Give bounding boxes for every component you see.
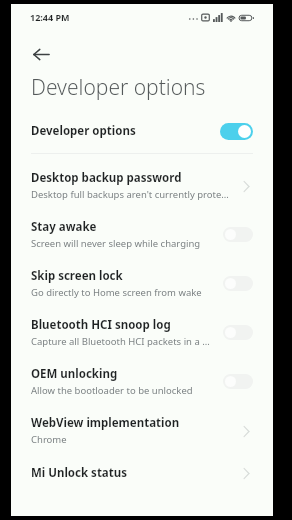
staticText: Desktop backup password	[31, 170, 182, 186]
staticText: Go directly to Home screen from wake	[31, 286, 202, 299]
staticText: Bluetooth HCI snoop log	[31, 317, 171, 333]
button[interactable]: Stay awake	[11, 219, 273, 250]
button[interactable]: Bluetooth HCI snoop log	[11, 317, 273, 348]
button[interactable]: Back	[24, 37, 58, 71]
button[interactable]: Skip screen lock	[11, 268, 273, 299]
staticText: Capture all Bluetooth HCI packets in a f…	[31, 335, 215, 348]
staticText: Allow the bootloader to be unlocked	[31, 384, 193, 397]
staticText: Skip screen lock	[31, 268, 123, 284]
staticText: OEM unlocking	[31, 366, 118, 382]
staticText: 12:44 PM	[30, 11, 70, 23]
staticText: Stay awake	[31, 219, 97, 235]
staticText: Desktop full backups aren't currently pr…	[31, 188, 231, 201]
staticText: WebView implementation	[31, 415, 180, 431]
button[interactable]: WebView implementation	[11, 415, 273, 446]
staticText: Mi Unlock status	[31, 465, 128, 481]
button[interactable]: OEM unlocking	[11, 366, 273, 397]
staticText: Developer options	[31, 123, 136, 139]
button[interactable]: Developer options	[11, 116, 273, 146]
staticText: Screen will never sleep while charging	[31, 237, 201, 250]
button[interactable]: Desktop backup password	[11, 170, 273, 201]
staticText: Developer options	[31, 73, 206, 102]
button[interactable]: Mi Unlock status	[11, 464, 273, 482]
staticText: Chrome	[31, 433, 67, 446]
